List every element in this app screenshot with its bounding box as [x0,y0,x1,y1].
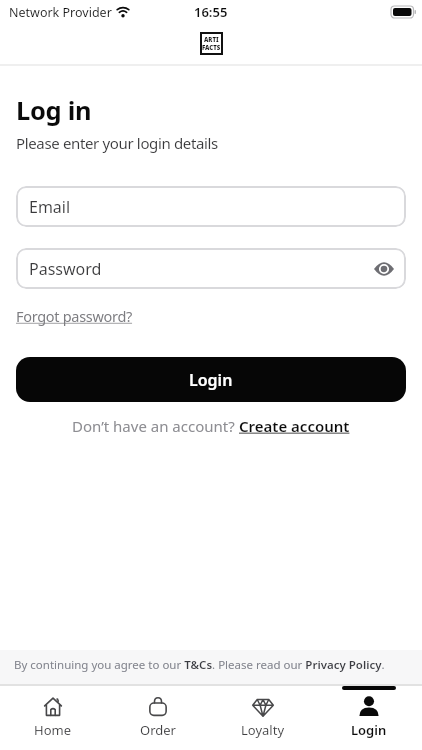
button[interactable]: Login [16,357,406,402]
staticText: Network Provider [9,4,112,21]
staticText: Create account [239,416,350,436]
staticText: Email [29,196,71,218]
button[interactable]: Login [316,686,422,750]
staticText: Home [34,721,71,739]
button[interactable]: Password [16,248,406,289]
button[interactable]: Home [0,686,105,750]
staticText: Order [140,721,176,739]
staticText: Password [29,258,102,280]
staticText: Log in [16,93,92,128]
button[interactable]: Email [16,186,406,227]
staticText: ARTI [204,36,219,44]
staticText: Login [189,369,233,391]
staticText: Login [351,721,387,739]
staticText: By continuing you agree to our T&Cs. Ple… [14,657,385,673]
button[interactable]: Loyalty [210,686,316,750]
staticText: Don’t have an account? [72,416,239,436]
staticText: Please enter your login details [16,133,218,153]
staticText: Loyalty [241,721,285,739]
staticText: 16:55 [194,3,228,21]
button[interactable]: Forgot password? [16,306,133,326]
button[interactable]: Order [105,686,210,750]
button[interactable]: Don’t have an account? [16,416,406,436]
staticText: FACTS [202,44,221,52]
